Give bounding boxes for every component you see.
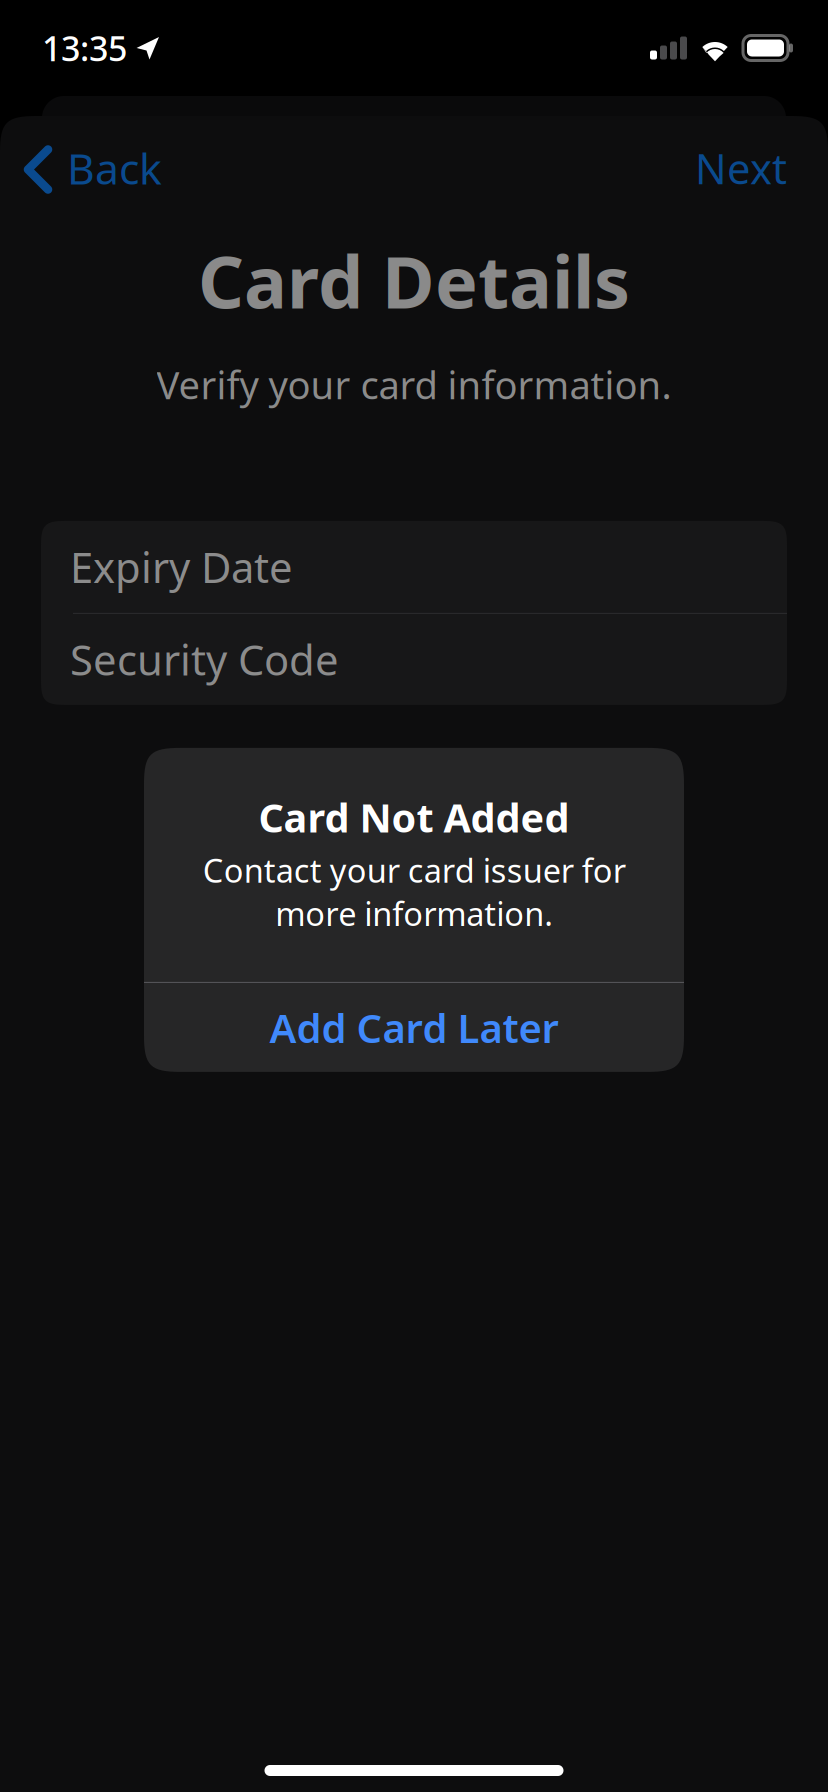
staticText: Contact your card issuer for more inform…	[202, 848, 625, 935]
staticText: Security Code	[70, 632, 339, 687]
button[interactable]: Add Card Later	[144, 983, 684, 1072]
staticText: Card Details	[198, 233, 630, 328]
button[interactable]: Security Code	[41, 614, 787, 705]
staticText: 13:35	[42, 25, 127, 71]
staticText: Verify your card information.	[156, 359, 671, 410]
staticText: Back	[67, 140, 162, 196]
staticText: Expiry Date	[70, 539, 293, 595]
staticText: Next	[695, 140, 787, 196]
staticText: Card Not Added	[258, 791, 569, 843]
staticText: Add Card Later	[269, 1001, 558, 1054]
button[interactable]: Back	[0, 116, 178, 208]
button[interactable]: Next	[654, 116, 828, 208]
button[interactable]: Expiry Date	[41, 521, 787, 613]
